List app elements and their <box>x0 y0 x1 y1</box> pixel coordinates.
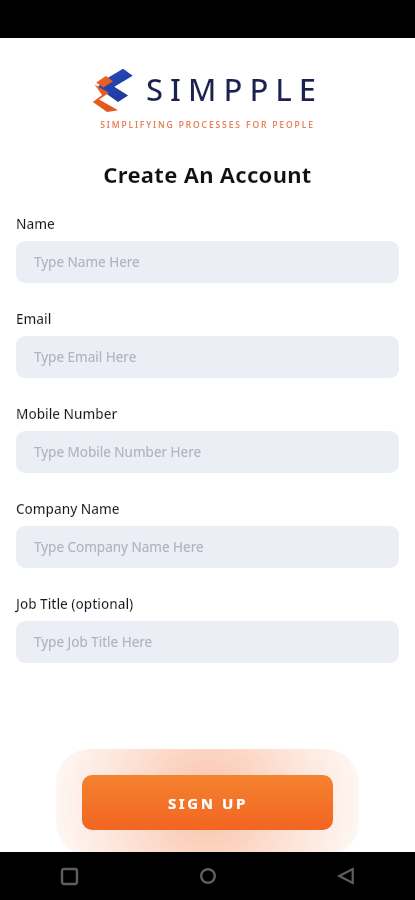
staticText: Type Mobile Number Here <box>34 443 202 461</box>
staticText: SIGN UP <box>168 793 248 813</box>
button[interactable]: Type Email Here <box>16 336 399 378</box>
staticText: Create An Account <box>0 159 415 189</box>
staticText: SIMPLIFYING PROCESSES FOR PEOPLE <box>0 119 415 131</box>
staticText: Type Job Title Here <box>34 633 153 651</box>
staticText: Company Name <box>16 500 120 518</box>
staticText: Name <box>16 215 55 233</box>
button[interactable]: Back <box>277 852 415 900</box>
button[interactable]: Recent apps <box>0 852 139 900</box>
staticText: SIMPPLE <box>146 68 324 110</box>
button[interactable]: SIGN UP <box>82 775 333 830</box>
button[interactable]: Home <box>139 852 277 900</box>
button[interactable]: Type Job Title Here <box>16 621 399 663</box>
staticText: Mobile Number <box>16 405 118 423</box>
staticText: Type Name Here <box>34 253 140 271</box>
button[interactable]: Type Name Here <box>16 241 399 283</box>
staticText: Type Company Name Here <box>34 538 204 556</box>
button[interactable]: Type Mobile Number Here <box>16 431 399 473</box>
button[interactable]: Type Company Name Here <box>16 526 399 568</box>
staticText: Type Email Here <box>34 348 137 366</box>
staticText: Email <box>16 310 52 328</box>
staticText: Job Title (optional) <box>16 595 134 613</box>
